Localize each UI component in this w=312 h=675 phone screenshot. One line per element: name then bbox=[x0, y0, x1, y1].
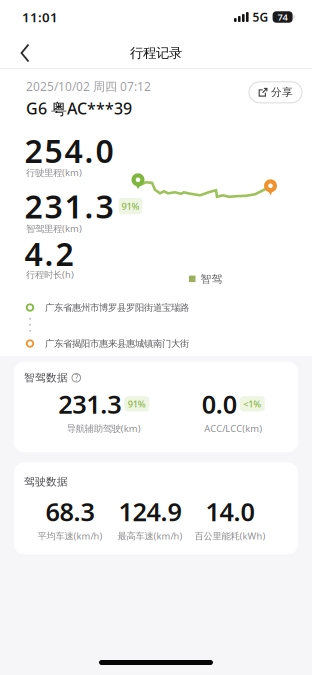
staticText: 行程记录 bbox=[130, 45, 182, 61]
staticText: 驾驶数据 bbox=[24, 475, 68, 488]
button[interactable] bbox=[0, 34, 29, 67]
staticText: 平均车速(km/h) bbox=[37, 530, 102, 542]
staticText: 5G bbox=[253, 9, 269, 25]
staticText: 智驾 bbox=[200, 272, 222, 285]
button[interactable]: 分享 bbox=[249, 76, 312, 97]
staticText: 231.3 bbox=[58, 387, 121, 421]
staticText: 254.0 bbox=[24, 129, 113, 172]
staticText: 广东省揭阳市惠来县惠城镇南门大街 bbox=[45, 338, 189, 349]
staticText: 0.0 bbox=[202, 387, 237, 421]
staticText: ? bbox=[75, 372, 78, 383]
staticText: 11:01 bbox=[22, 8, 58, 26]
staticText: 68.3 bbox=[45, 494, 94, 528]
staticText: 行驶里程(km) bbox=[26, 166, 82, 179]
staticText: 4.2 bbox=[24, 232, 73, 275]
staticText: 91% bbox=[121, 200, 139, 212]
staticText: 分享 bbox=[271, 86, 293, 99]
staticText: 导航辅助驾驶(km) bbox=[67, 422, 141, 434]
staticText: G6 粤AC***39 bbox=[26, 98, 132, 119]
staticText: 智驾里程(km) bbox=[26, 222, 82, 235]
staticText: 124.9 bbox=[118, 494, 181, 528]
staticText: 2025/10/02 周四 07:12 bbox=[26, 78, 151, 94]
button[interactable]: ? bbox=[72, 372, 80, 383]
staticText: 74 bbox=[278, 11, 288, 23]
staticText: ACC/LCC(km) bbox=[204, 422, 262, 434]
staticText: 14.0 bbox=[205, 494, 254, 528]
staticText: 231.3 bbox=[24, 185, 113, 227]
staticText: 最高车速(km/h) bbox=[117, 530, 182, 542]
staticText: 行程时长(h) bbox=[26, 268, 74, 281]
staticText: 广东省惠州市博罗县罗阳街道宝瑞路 bbox=[45, 302, 189, 313]
staticText: 百公里能耗(kWh) bbox=[194, 530, 265, 542]
staticText: 智驾数据 bbox=[24, 371, 68, 384]
staticText: <1% bbox=[243, 398, 261, 410]
staticText: 91% bbox=[128, 398, 146, 410]
